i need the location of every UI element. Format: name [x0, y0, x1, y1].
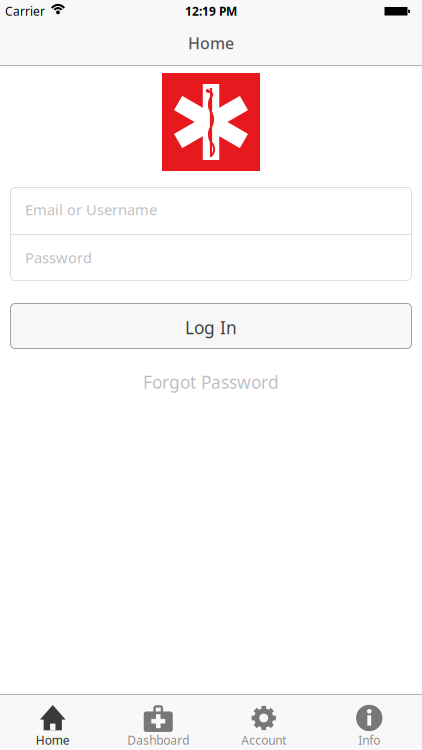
staticText: Home: [188, 32, 234, 54]
button[interactable]: Log In: [10, 303, 412, 349]
staticText: Forgot Password: [143, 370, 279, 393]
staticText: Password: [25, 248, 92, 267]
staticText: Carrier: [5, 3, 45, 19]
staticText: Email or Username: [25, 200, 157, 219]
staticText: Log In: [185, 316, 237, 339]
staticText: Account: [241, 732, 286, 748]
button[interactable]: Home: [0, 695, 105, 750]
button[interactable]: Info: [316, 695, 422, 750]
button[interactable]: Forgot Password: [143, 370, 279, 393]
button[interactable]: Dashboard: [105, 695, 211, 750]
staticText: Home: [36, 732, 70, 748]
button[interactable]: Account: [211, 695, 316, 750]
staticText: Dashboard: [127, 732, 189, 748]
staticText: 12:19 PM: [185, 3, 237, 19]
staticText: Info: [358, 732, 380, 748]
